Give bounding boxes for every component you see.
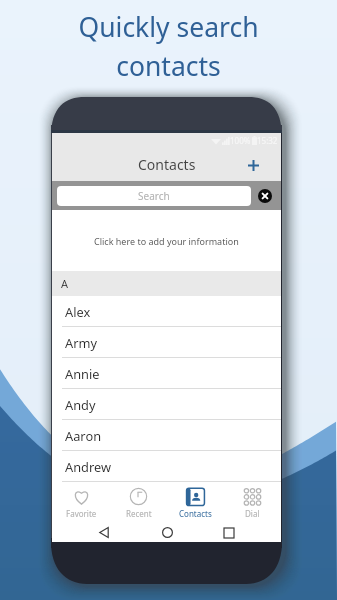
- staticText: Search: [138, 189, 170, 203]
- staticText: Alex: [65, 303, 91, 320]
- staticText: Dial: [245, 508, 260, 519]
- staticText: Annie: [65, 365, 100, 382]
- button[interactable]: Andy: [52, 389, 281, 420]
- button[interactable]: Favorite: [52, 482, 110, 523]
- button[interactable]: Annie: [52, 358, 281, 389]
- button[interactable]: Recent apps: [219, 523, 239, 542]
- staticText: Contacts: [138, 155, 196, 174]
- button[interactable]: Add contact: [242, 154, 264, 176]
- staticText: 15:32: [257, 135, 278, 146]
- button[interactable]: Home: [157, 523, 177, 542]
- staticText: Army: [65, 334, 97, 351]
- staticText: Contacts: [179, 508, 212, 519]
- button[interactable]: Contacts: [167, 482, 224, 523]
- button[interactable]: Alex: [52, 296, 281, 327]
- staticText: Andy: [65, 396, 96, 413]
- button[interactable]: Army: [52, 327, 281, 358]
- button[interactable]: Dial: [224, 482, 281, 523]
- button[interactable]: Back: [94, 523, 114, 542]
- staticText: Andrew: [65, 458, 112, 475]
- staticText: Aaron: [65, 427, 102, 444]
- staticText: Recent: [126, 508, 152, 519]
- button[interactable]: Search: [57, 186, 251, 206]
- button[interactable]: Aaron: [52, 420, 281, 451]
- staticText: A: [61, 276, 69, 291]
- button[interactable]: Click here to add your information: [52, 210, 281, 271]
- staticText: Favorite: [66, 508, 97, 519]
- staticText: 100%: [230, 135, 251, 146]
- button[interactable]: Andrew: [52, 451, 281, 482]
- button[interactable]: Recent: [110, 482, 167, 523]
- staticText: Quickly search contacts: [0, 9, 337, 84]
- button[interactable]: Clear search: [255, 186, 275, 206]
- staticText: Click here to add your information: [94, 235, 239, 247]
